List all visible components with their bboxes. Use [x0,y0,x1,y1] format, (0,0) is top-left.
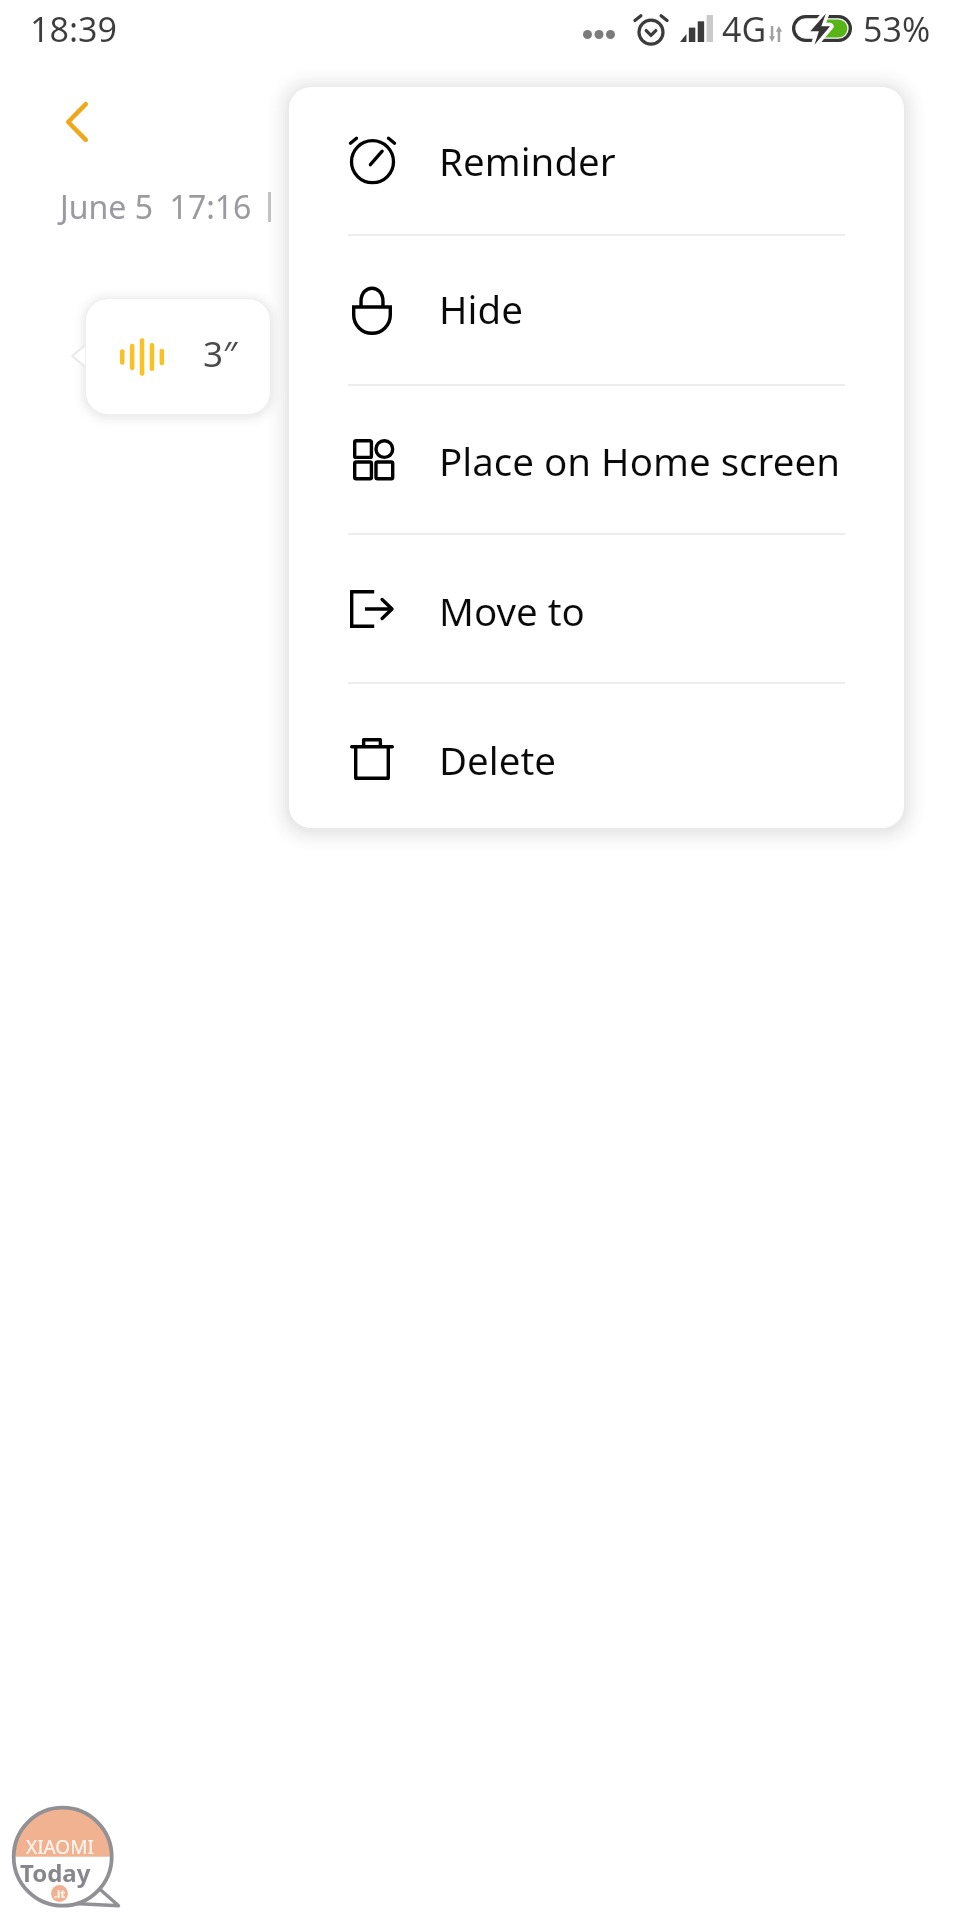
button[interactable]: Reminder [289,87,904,234]
staticText: 3″ [203,330,238,378]
staticText: XIAOMI [26,1834,94,1860]
button[interactable]: Move to [289,536,904,685]
button[interactable]: 3″ [86,299,270,414]
staticText: Reminder [439,135,616,187]
staticText: Today [20,1856,91,1889]
staticText: Place on Home screen [439,435,840,487]
staticText: 4G [722,6,767,52]
staticText: Move to [439,585,585,637]
staticText: Hide [439,283,523,335]
button[interactable]: Delete [289,687,904,828]
staticText: 18:39 [30,6,117,52]
staticText: Delete [439,734,557,786]
staticText: .it [54,1886,66,1901]
button[interactable]: Back [38,86,116,158]
staticText: June 5 17:16 [60,185,252,229]
button[interactable]: Place on Home screen [289,386,904,535]
button[interactable]: Hide [289,234,904,384]
staticText: 53% [863,6,931,52]
